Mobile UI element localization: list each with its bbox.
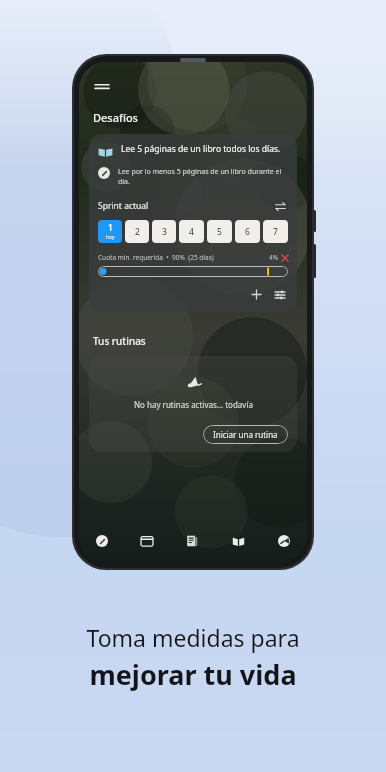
staticText: Tus rutinas xyxy=(93,334,146,348)
button[interactable]: Explore xyxy=(79,526,124,556)
staticText: 5 xyxy=(217,226,222,238)
button[interactable]: Notes xyxy=(169,526,215,556)
button[interactable]: Filter xyxy=(271,286,288,303)
staticText: Sprint actual xyxy=(98,200,149,212)
staticText: Iniciar una rutina xyxy=(213,429,278,440)
staticText: No hay rutinas activas… todavía xyxy=(134,399,253,410)
button[interactable]: Iniciar una rutina xyxy=(203,425,288,444)
button[interactable]: 5 xyxy=(207,220,232,243)
button[interactable]: 6 xyxy=(235,220,260,243)
staticText: Toma medidas para xyxy=(86,622,300,653)
staticText: Desafíos xyxy=(93,110,138,125)
staticText: 3 xyxy=(162,226,167,238)
button[interactable]: Lee 5 páginas de un libro todos los días… xyxy=(89,134,297,312)
button[interactable]: 2 xyxy=(125,220,149,243)
staticText: hoy xyxy=(106,234,115,241)
staticText: 6 xyxy=(245,226,250,238)
staticText: Cuota mín. requerida • 90% (25 días) xyxy=(98,253,214,262)
staticText: Lee por lo menos 5 páginas de un libro d… xyxy=(118,167,288,187)
button[interactable]: 1 xyxy=(98,220,122,243)
staticText: 4% xyxy=(269,253,279,262)
button[interactable]: Stats xyxy=(261,526,307,556)
staticText: 4 xyxy=(189,226,194,238)
staticText: 1 xyxy=(108,222,113,234)
staticText: 7 xyxy=(273,226,278,238)
staticText: 2 xyxy=(135,226,140,238)
staticText: Lee 5 páginas de un libro todos los días… xyxy=(121,143,281,155)
button[interactable]: No hay rutinas activas… todavía xyxy=(89,356,297,452)
staticText: mejorar tu vida xyxy=(89,656,297,693)
button[interactable]: Add xyxy=(248,286,265,303)
button[interactable]: Swap xyxy=(272,198,288,214)
button[interactable]: Calendar xyxy=(124,526,169,556)
button[interactable]: 7 xyxy=(263,220,288,243)
button[interactable]: Library xyxy=(215,526,261,556)
button[interactable]: 4 xyxy=(179,220,204,243)
button[interactable]: Menu xyxy=(89,74,115,100)
button[interactable]: 3 xyxy=(152,220,176,243)
